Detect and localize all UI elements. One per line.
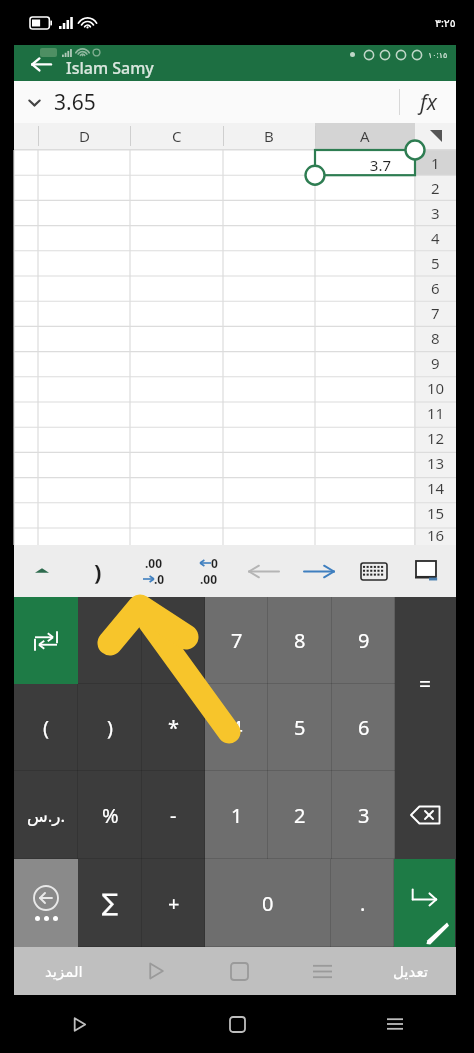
button[interactable]: D	[38, 123, 130, 149]
button[interactable]: C	[130, 123, 223, 149]
staticText: 0	[211, 555, 218, 571]
staticText: 11	[427, 403, 445, 423]
staticText: D	[79, 126, 90, 146]
button[interactable]: Back	[114, 947, 198, 995]
staticText: 1	[231, 802, 243, 829]
button[interactable]: 7	[205, 597, 268, 684]
staticText: 2	[294, 802, 306, 829]
button[interactable]: Next	[291, 545, 346, 597]
staticText: ١٠:١٥	[428, 49, 448, 60]
staticText: 13	[427, 453, 445, 473]
button[interactable]: 8	[268, 597, 332, 684]
staticText: المزيد	[45, 963, 83, 980]
button[interactable]: Display	[401, 545, 456, 597]
staticText: +	[168, 890, 180, 917]
button[interactable]: .	[331, 859, 394, 947]
button[interactable]: Keyboard	[346, 545, 401, 597]
staticText: *	[168, 714, 180, 741]
staticText: 8	[431, 328, 440, 348]
staticText: 14	[427, 478, 445, 498]
button[interactable]: ∑	[78, 859, 142, 947]
button[interactable]: Recent apps	[316, 995, 474, 1053]
staticText: 10	[427, 378, 445, 398]
staticText: B	[264, 126, 274, 146]
staticText: 12	[427, 428, 445, 448]
staticText: .0	[154, 571, 165, 587]
staticText: Islam Samy	[66, 57, 154, 79]
button[interactable]: )	[78, 684, 142, 771]
button[interactable]: Expand formula bar	[14, 81, 54, 123]
button[interactable]: Collapse	[14, 545, 70, 597]
button[interactable]: Backspace	[395, 771, 456, 859]
staticText: -	[170, 802, 177, 829]
staticText: )	[94, 556, 102, 586]
button[interactable]: 2	[268, 771, 332, 859]
staticText: ر.س.	[27, 804, 66, 827]
button[interactable]: 5	[268, 684, 332, 771]
button[interactable]: Formula	[400, 81, 456, 123]
staticText: 3.7	[369, 155, 391, 175]
button[interactable]: A	[315, 123, 415, 149]
staticText: 8	[294, 627, 306, 654]
staticText: 2	[431, 178, 440, 198]
staticText: 7	[431, 303, 440, 323]
button[interactable]: Indent	[14, 597, 78, 684]
button[interactable]: Decrease decimal	[181, 545, 236, 597]
button[interactable]: تعديل	[364, 947, 456, 995]
button[interactable]: *	[142, 684, 205, 771]
staticText: 1	[431, 153, 440, 173]
staticText: 9	[358, 627, 370, 654]
button[interactable]: 4	[205, 684, 268, 771]
staticText: A	[360, 126, 370, 146]
staticText: %	[102, 802, 119, 829]
button[interactable]: 6	[332, 684, 395, 771]
button[interactable]: (	[14, 684, 78, 771]
button[interactable]: -	[142, 771, 205, 859]
staticText: 4	[231, 714, 243, 741]
button[interactable]: Back	[0, 995, 158, 1053]
staticText: .00	[145, 555, 163, 571]
button[interactable]: 9	[332, 597, 395, 684]
staticText: 5	[431, 253, 440, 273]
staticText: ٣:٢٥	[435, 15, 456, 30]
button[interactable]: ر.س.	[14, 771, 78, 859]
button[interactable]: Close paren	[70, 545, 126, 597]
button[interactable]: Increase decimal	[126, 545, 181, 597]
staticText: .00	[200, 571, 218, 587]
staticText: )	[107, 714, 113, 741]
staticText: 7	[231, 627, 243, 654]
button[interactable]: Recent apps	[281, 947, 364, 995]
staticText: 0	[262, 890, 274, 917]
button[interactable]: Enter	[394, 859, 455, 947]
button[interactable]: +	[142, 859, 205, 947]
button[interactable]: Back	[24, 47, 58, 81]
staticText: 3	[431, 203, 440, 223]
staticText: C	[172, 126, 182, 146]
button[interactable]: Previous	[236, 545, 291, 597]
button[interactable]: B	[223, 123, 315, 149]
staticText: =	[419, 670, 432, 699]
button[interactable]: المزيد	[14, 947, 114, 995]
staticText: (	[43, 714, 49, 741]
staticText: 16	[427, 525, 445, 545]
button[interactable]: :	[78, 597, 142, 684]
button[interactable]	[142, 597, 205, 684]
button[interactable]: 0	[205, 859, 331, 947]
button[interactable]: Home	[198, 947, 281, 995]
staticText: تعديل	[393, 963, 428, 980]
staticText: 9	[431, 353, 440, 373]
staticText: 6	[431, 278, 440, 298]
staticText: 3.65	[54, 88, 399, 117]
button[interactable]: Home	[158, 995, 316, 1053]
staticText: 15	[427, 503, 445, 523]
button[interactable]: More	[14, 859, 78, 947]
staticText: 5	[294, 714, 306, 741]
button[interactable]: 1	[205, 771, 268, 859]
button[interactable]: =	[395, 597, 456, 772]
staticText: .	[360, 890, 366, 917]
staticText: ∑	[102, 889, 119, 917]
button[interactable]: 3	[332, 771, 395, 859]
staticText: 3	[358, 802, 370, 829]
button[interactable]: %	[78, 771, 142, 859]
